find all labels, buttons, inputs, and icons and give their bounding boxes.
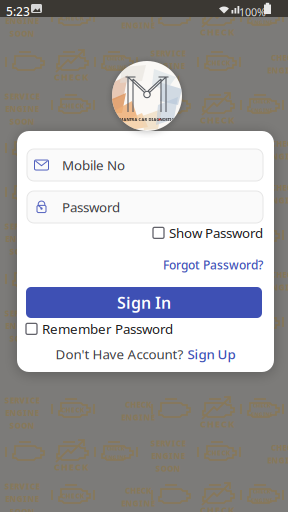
staticText: CHECK <box>271 138 288 149</box>
staticText: SOON <box>10 333 34 344</box>
button[interactable]: Mobile No <box>27 149 263 181</box>
staticText: CHECK <box>200 114 234 126</box>
staticText: CHECK <box>200 504 234 512</box>
staticText: CHECK <box>207 449 231 457</box>
staticText: ENGINE <box>151 278 185 288</box>
staticText: SOON <box>156 463 180 474</box>
staticText: CHECK <box>271 182 288 193</box>
button[interactable]: Password <box>27 191 263 223</box>
staticText: SERVICE <box>151 48 185 59</box>
staticText: ENGINE <box>251 19 273 26</box>
staticText: ENGINE <box>121 412 155 423</box>
staticText: ENGINE <box>121 325 155 336</box>
staticText: ENGINE <box>5 321 39 331</box>
staticText: ENGINE <box>251 497 273 504</box>
staticText: CHECK <box>253 402 271 409</box>
staticText: Password <box>62 198 120 216</box>
button[interactable]: Sign In <box>26 287 262 318</box>
staticText: SERVICE <box>5 91 39 102</box>
staticText: CHECK <box>61 319 85 327</box>
staticText: SOON <box>156 290 180 301</box>
staticText: CHECK <box>61 492 85 500</box>
staticText: SERVICE <box>151 178 185 189</box>
staticText: SERVICE <box>151 438 185 449</box>
staticText: ENGINE <box>5 16 39 26</box>
staticText: SOON <box>156 73 180 84</box>
staticText: ENGINE <box>121 238 155 249</box>
staticText: Mobile No <box>62 156 125 174</box>
staticText: CHECK <box>207 189 231 197</box>
staticText: SOON <box>10 506 34 512</box>
staticText: SERVICE <box>5 3 39 14</box>
staticText: ENGINE <box>267 65 288 76</box>
staticText: SERVICE <box>5 221 39 232</box>
staticText: CHECK <box>125 95 151 106</box>
staticText: CHECK <box>200 418 234 430</box>
staticText: ENGINE <box>121 20 155 31</box>
staticText: ENGINE <box>121 108 155 119</box>
staticText: Don't Have Account? <box>55 345 183 363</box>
staticText: CHECK <box>125 399 151 410</box>
staticText: SERVICE <box>151 265 185 276</box>
staticText: Sign Up <box>187 345 235 363</box>
staticText: CHECK <box>125 7 151 18</box>
staticText: ENGINE <box>5 408 39 418</box>
staticText: SOON <box>10 116 34 127</box>
button[interactable]: Forgot Password? <box>163 257 263 273</box>
staticText: ENGINE <box>105 281 127 288</box>
staticText: CHECK <box>253 98 271 105</box>
staticText: Remember Password <box>42 320 173 338</box>
staticText: ENGINE <box>151 191 185 201</box>
staticText: ENGINE <box>267 455 288 466</box>
button[interactable]: Remember Password <box>26 320 173 338</box>
staticText: Forgot Password? <box>163 257 263 273</box>
staticText: ENGINE <box>267 151 288 162</box>
staticText: SERVICE <box>5 481 39 492</box>
staticText: CHECK <box>107 445 125 452</box>
staticText: ENGINE <box>151 147 185 157</box>
staticText: ENGINE <box>5 494 39 504</box>
staticText: ENGINE <box>105 454 127 461</box>
staticText: ENGINE <box>121 498 155 509</box>
staticText: CHECK <box>253 488 271 495</box>
button[interactable]: Show Password <box>153 224 263 242</box>
staticText: CHECK <box>54 71 88 83</box>
staticText: CHECK <box>107 55 125 62</box>
staticText: CHECK <box>253 10 271 17</box>
staticText: CHECK <box>125 312 151 323</box>
staticText: CHECK <box>54 157 88 169</box>
staticText: SOON <box>10 420 34 431</box>
staticText: CHECK <box>54 461 88 473</box>
staticText: CHECK <box>200 26 234 38</box>
staticText: CHECK <box>54 201 88 213</box>
staticText: ENGINE <box>5 234 39 244</box>
staticText: SERVICE <box>5 308 39 319</box>
staticText: CHECK <box>271 269 288 280</box>
staticText: CHECK <box>61 102 85 110</box>
staticText: CHECK <box>207 59 231 67</box>
staticText: MANTRA CAR DIAGNOSTIC <box>119 117 174 122</box>
staticText: Sign In <box>117 292 171 313</box>
staticText: SERVICE <box>5 395 39 406</box>
staticText: SOON <box>10 246 34 257</box>
staticText: ENGINE <box>5 104 39 114</box>
staticText: ENGINE <box>105 64 127 71</box>
staticText: ENGINE <box>267 282 288 293</box>
button[interactable]: Sign Up <box>187 345 235 363</box>
staticText: SOON <box>10 28 34 39</box>
staticText: CHECK <box>207 145 231 153</box>
